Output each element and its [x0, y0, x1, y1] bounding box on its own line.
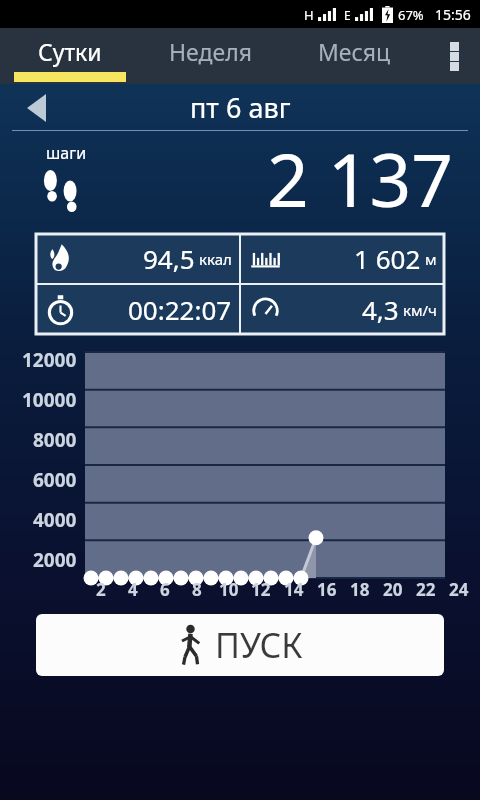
staticText: 14: [284, 578, 304, 601]
staticText: E: [344, 7, 351, 23]
staticText: 22: [416, 578, 436, 601]
staticText: 4000: [33, 507, 77, 533]
staticText: ккал: [199, 249, 232, 269]
button[interactable]: 94,5: [36, 234, 239, 283]
staticText: 16: [317, 578, 337, 601]
staticText: Сутки: [38, 36, 102, 67]
staticText: 24: [449, 578, 469, 601]
staticText: 12: [251, 578, 271, 601]
staticText: 15:56: [435, 5, 471, 24]
staticText: 10: [219, 578, 239, 601]
staticText: 8: [192, 578, 202, 601]
button[interactable]: 12000: [0, 340, 480, 604]
staticText: 1 602: [354, 241, 421, 276]
staticText: км/ч: [403, 300, 437, 320]
staticText: 8000: [33, 427, 77, 453]
staticText: м: [425, 249, 437, 269]
staticText: 4: [128, 578, 138, 601]
button[interactable]: Неделя: [140, 28, 280, 84]
staticText: 2000: [33, 547, 77, 573]
staticText: шаги: [46, 142, 87, 164]
button[interactable]: ПУСК: [36, 614, 444, 676]
staticText: 20: [383, 578, 403, 601]
button[interactable]: More options: [428, 28, 480, 84]
staticText: 10000: [22, 387, 77, 413]
staticText: 12000: [22, 347, 77, 373]
staticText: 4,3: [362, 292, 399, 327]
staticText: 6000: [33, 467, 77, 493]
staticText: 2: [96, 578, 106, 601]
button[interactable]: 00:22:07: [36, 285, 239, 334]
staticText: 6: [160, 578, 170, 601]
button[interactable]: Сутки: [0, 28, 140, 84]
staticText: H: [304, 6, 314, 24]
staticText: ПУСК: [215, 622, 303, 668]
button[interactable]: Месяц: [280, 28, 428, 84]
button[interactable]: Previous day: [8, 84, 64, 131]
staticText: 67%: [398, 6, 424, 24]
staticText: 94,5: [143, 241, 195, 276]
button[interactable]: шаги: [0, 131, 480, 225]
staticText: 18: [350, 578, 370, 601]
button[interactable]: 1 602: [241, 234, 444, 283]
staticText: 00:22:07: [128, 292, 232, 327]
button[interactable]: 4,3: [241, 285, 444, 334]
staticText: Неделя: [169, 36, 252, 67]
staticText: Месяц: [318, 36, 390, 67]
staticText: 2 137: [267, 129, 454, 223]
staticText: пт 6 авг: [190, 89, 291, 126]
